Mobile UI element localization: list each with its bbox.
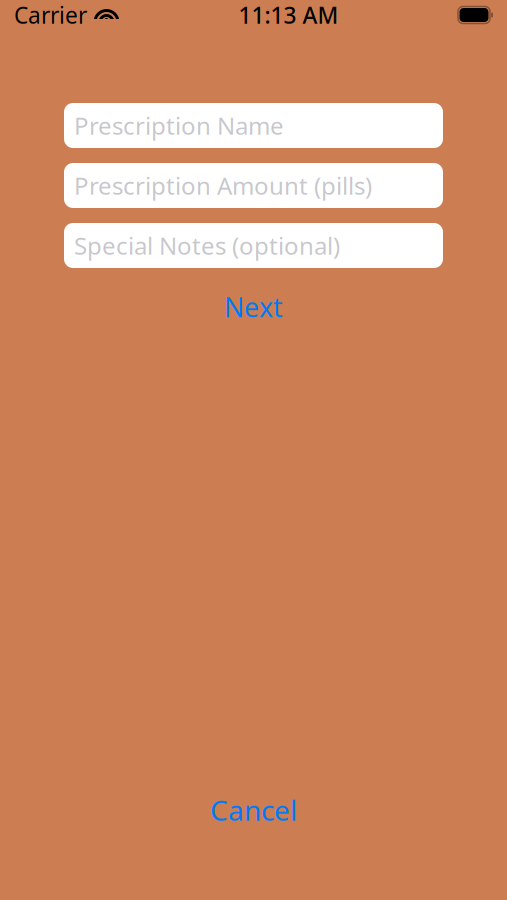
staticText: Prescription Name: [74, 110, 284, 141]
staticText: Carrier: [14, 0, 87, 30]
staticText: Next: [224, 289, 283, 325]
staticText: Special Notes (optional): [74, 230, 340, 261]
staticText: 11:13 AM: [238, 0, 338, 30]
button[interactable]: Cancel: [64, 796, 443, 824]
staticText: Prescription Amount (pills): [74, 170, 372, 201]
staticText: Cancel: [210, 791, 297, 829]
button[interactable]: Next: [64, 294, 443, 320]
